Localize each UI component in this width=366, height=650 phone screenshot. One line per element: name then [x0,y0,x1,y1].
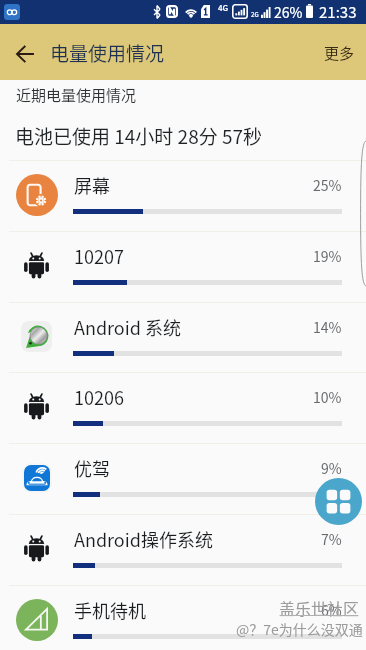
button[interactable]: 优驾 [0,443,366,514]
staticText: 4G [218,2,229,14]
staticText: @？7e为什么没双通 [236,619,363,639]
button[interactable]: 屏幕 [0,160,366,231]
staticText: 盖乐世社区 [279,596,360,619]
button[interactable]: Back [10,39,40,69]
staticText: 7% [321,529,342,549]
button[interactable]: Android 系统 [0,302,366,373]
staticText: 手机待机 [74,597,146,623]
staticText: 10% [313,387,342,407]
staticText: 10207 [74,243,124,269]
staticText: 6% [321,600,342,620]
staticText: Android操作系统 [74,526,213,552]
button[interactable]: Android操作系统 [0,514,366,585]
staticText: 2G [251,10,259,19]
button[interactable]: 手机待机 [0,585,366,650]
staticText: 26% [274,2,303,22]
staticText: Android 系统 [74,314,181,340]
staticText: 19% [313,246,342,266]
button[interactable]: 10207 [0,231,366,302]
staticText: 14% [313,317,342,337]
staticText: 10206 [74,384,124,410]
staticText: 更多 [324,42,355,64]
button[interactable]: Apps [315,478,362,525]
staticText: 25% [313,175,342,195]
staticText: 21:33 [319,1,357,23]
staticText: 近期电量使用情况 [16,84,137,106]
button[interactable]: 10206 [0,372,366,443]
staticText: 电池已使用 14小时 28分 57秒 [15,122,263,150]
staticText: 优驾 [74,455,110,481]
staticText: 电量使用情况 [50,39,165,67]
staticText: 9% [321,458,342,478]
button[interactable]: 更多 [316,36,363,70]
staticText: 屏幕 [74,172,110,198]
